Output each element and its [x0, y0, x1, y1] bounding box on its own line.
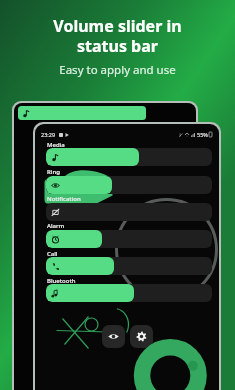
button[interactable] [46, 176, 212, 194]
button[interactable]: Preview [102, 325, 125, 348]
button[interactable] [46, 257, 212, 275]
staticText: Media [47, 141, 65, 149]
button[interactable] [46, 203, 212, 221]
staticText: Notification [47, 195, 81, 203]
staticText: Alarm [47, 222, 65, 230]
button[interactable] [46, 148, 212, 166]
staticText: Call [47, 250, 58, 258]
staticText: 23:29 [41, 131, 56, 138]
staticText: Volume slider in status bar [53, 15, 182, 56]
button[interactable]: Settings [130, 325, 153, 348]
staticText: Bluetooth [47, 277, 76, 285]
staticText: 55% [197, 131, 208, 138]
staticText: Ring [47, 168, 60, 176]
staticText: Easy to apply and use [59, 62, 176, 78]
button[interactable] [46, 230, 212, 248]
button[interactable] [46, 284, 212, 302]
